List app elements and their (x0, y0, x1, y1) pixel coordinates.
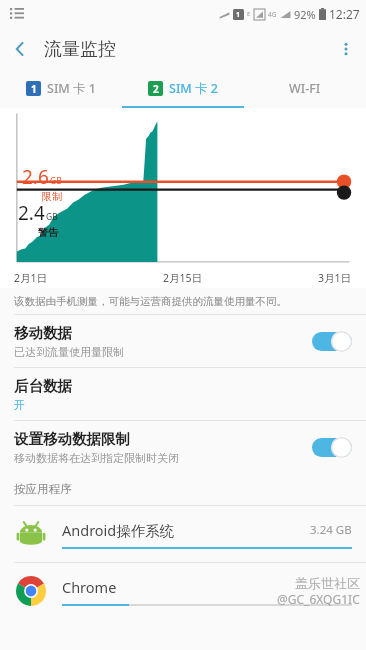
staticText: 移动数据将在达到指定限制时关闭 (14, 451, 179, 465)
staticText: 2.6 (22, 164, 49, 190)
staticText: 流量监控 (44, 38, 116, 61)
staticText: Chrome (62, 577, 117, 597)
staticText: 92% (294, 7, 316, 22)
button[interactable]: 后台数据 (0, 368, 366, 420)
staticText: 限制 (42, 190, 62, 203)
staticText: E (247, 10, 251, 18)
button[interactable]: WI-FI (244, 70, 366, 106)
staticText: 警告 (38, 226, 58, 239)
staticText: 开 (14, 398, 25, 412)
button[interactable]: Chrome (0, 563, 366, 619)
staticText: 1 (31, 82, 37, 96)
staticText: SIM 卡 2 (169, 80, 218, 97)
staticText: 按应用程序 (14, 482, 72, 496)
staticText: SIM 卡 1 (47, 80, 96, 97)
staticText: GB (46, 211, 58, 223)
button[interactable]: 设置移动数据限制 (0, 421, 366, 473)
button[interactable]: Toggle (312, 331, 352, 352)
button[interactable]: 2 (122, 70, 244, 106)
staticText: 已达到流量使用量限制 (14, 345, 124, 359)
staticText: 后台数据 (14, 377, 72, 395)
staticText: 移动数据 (14, 324, 72, 342)
staticText: @GC_6XQG1IC (277, 591, 360, 607)
staticText: 1 (236, 10, 241, 20)
button[interactable]: More options (326, 29, 366, 69)
staticText: 3.24 GB (310, 522, 352, 538)
button[interactable]: Android操作系统 (0, 506, 366, 562)
staticText: 该数据由手机测量，可能与运营商提供的流量使用量不同。 (14, 295, 287, 308)
staticText: 2月15日 (163, 271, 203, 285)
staticText: 2 (153, 82, 159, 96)
button[interactable]: 1 (0, 70, 122, 106)
staticText: 4G (268, 10, 277, 19)
staticText: 2.4 (18, 200, 45, 226)
button[interactable]: Back (0, 29, 40, 69)
staticText: 3月1日 (318, 271, 352, 285)
staticText: 12:27 (329, 6, 360, 22)
button[interactable]: 移动数据 (0, 315, 366, 367)
staticText: 盖乐世社区 (295, 575, 360, 591)
staticText: WI-FI (289, 80, 321, 97)
staticText: 2月1日 (14, 271, 48, 285)
button[interactable]: Toggle (312, 437, 352, 458)
staticText: Android操作系统 (62, 520, 175, 540)
staticText: GB (50, 175, 62, 187)
staticText: 设置移动数据限制 (14, 430, 130, 448)
